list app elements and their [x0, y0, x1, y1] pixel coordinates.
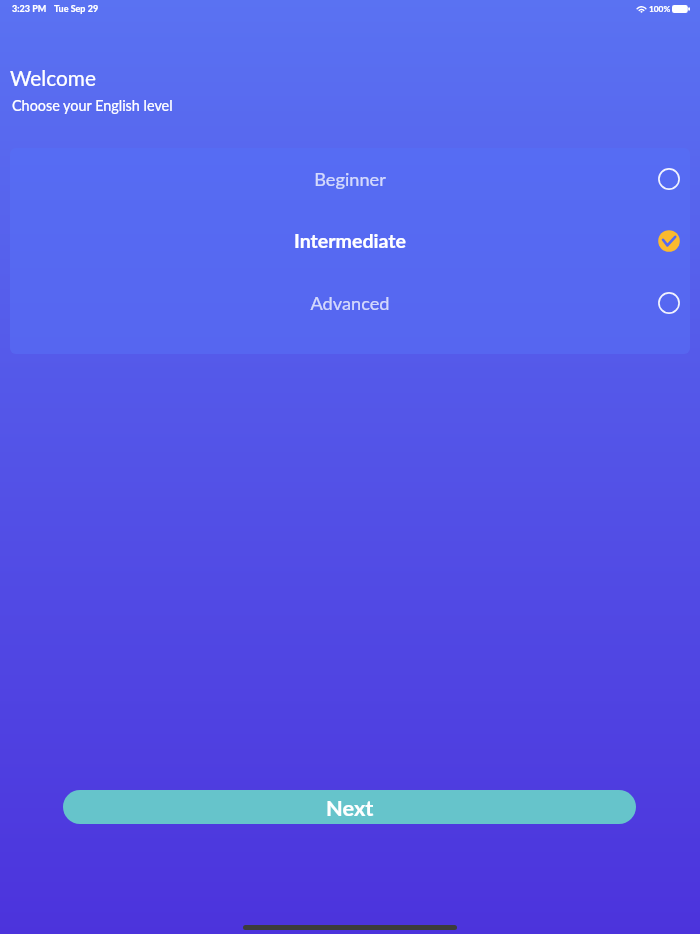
staticText: Choose your English level [12, 97, 173, 114]
staticText: 100% [649, 4, 671, 14]
staticText: Welcome [10, 65, 96, 90]
staticText: Beginner [10, 168, 690, 190]
button[interactable]: Intermediate [10, 210, 690, 272]
staticText: Advanced [10, 292, 690, 314]
button[interactable]: Advanced [10, 272, 690, 334]
other: Select Beginner [656, 166, 682, 192]
staticText: 3:23 PM [12, 3, 47, 14]
button[interactable]: Beginner [10, 148, 690, 210]
other: Select Advanced [656, 290, 682, 316]
staticText: Next [326, 794, 374, 820]
staticText: Tue Sep 29 [54, 3, 99, 14]
other: Select Intermediate [656, 228, 682, 254]
button[interactable]: Next [63, 790, 636, 824]
staticText: Intermediate [10, 229, 690, 253]
